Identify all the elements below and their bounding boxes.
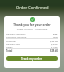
staticText: $29.40 [50,49,58,52]
button[interactable]: Subtotal [4,39,60,42]
button[interactable]: Delivery fee [4,42,60,45]
staticText: Order Confirmed [16,5,49,10]
staticText: Track my order [21,57,43,61]
staticText: Edit [53,32,58,35]
staticText: Delivery address [6,32,26,35]
staticText: Subtotal [6,39,16,42]
staticText: Taxes [6,45,13,48]
button[interactable]: Taxes [4,45,60,48]
button[interactable]: Delivery address [4,32,60,35]
staticText: $1.90 [51,45,58,48]
button[interactable]: Track my order [6,56,58,61]
staticText: $3.50 [51,42,58,45]
staticText: Visa [53,35,58,38]
button[interactable]: Total [4,49,60,52]
staticText: Payment method [6,35,27,38]
button[interactable]: Payment method [4,35,60,38]
staticText: Delivery fee [6,42,20,45]
staticText: Order #A2941 · confirmed [4,27,60,30]
staticText: Total [6,49,13,52]
staticText: $24.00 [50,39,58,42]
staticText: Thank you for your order [4,23,60,27]
